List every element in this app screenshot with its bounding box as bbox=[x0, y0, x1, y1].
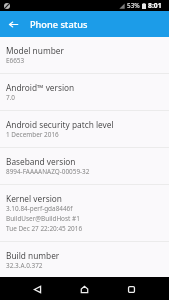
button[interactable]: Back bbox=[26, 277, 49, 300]
button[interactable]: Android security patch level bbox=[0, 111, 169, 147]
staticText: Android security patch level bbox=[6, 119, 114, 130]
staticText: 32.3.A.0.372 bbox=[6, 261, 43, 269]
staticText: BuildUser@BuildHost #1 bbox=[6, 214, 80, 223]
staticText: 3.10.84-perf-gda8446f bbox=[6, 204, 73, 213]
staticText: E6653 bbox=[6, 56, 25, 65]
button[interactable]: Kernel version bbox=[0, 185, 169, 241]
staticText: Build number bbox=[6, 250, 60, 261]
staticText: Tue Dec 27 22:20:45 2016 bbox=[6, 224, 83, 233]
button[interactable]: Home bbox=[73, 277, 96, 300]
staticText: Phone status bbox=[30, 18, 88, 31]
staticText: 8994-FAAAANAZQ-00059-32 bbox=[6, 167, 90, 176]
staticText: 53% bbox=[127, 1, 140, 10]
staticText: Model number bbox=[6, 45, 64, 56]
button[interactable]: Build number bbox=[0, 242, 169, 277]
button[interactable]: Recent apps bbox=[120, 277, 143, 300]
button[interactable]: Model number bbox=[0, 37, 169, 73]
button[interactable]: Navigate up bbox=[0, 11, 26, 37]
staticText: Baseband version bbox=[6, 156, 76, 167]
staticText: 7.0 bbox=[6, 93, 16, 102]
button[interactable]: Android™ version bbox=[0, 74, 169, 110]
staticText: 1 December 2016 bbox=[6, 130, 59, 139]
staticText: Kernel version bbox=[6, 193, 62, 204]
button[interactable]: Baseband version bbox=[0, 148, 169, 184]
staticText: 8:01 bbox=[148, 1, 162, 10]
staticText: Android™ version bbox=[6, 82, 75, 93]
